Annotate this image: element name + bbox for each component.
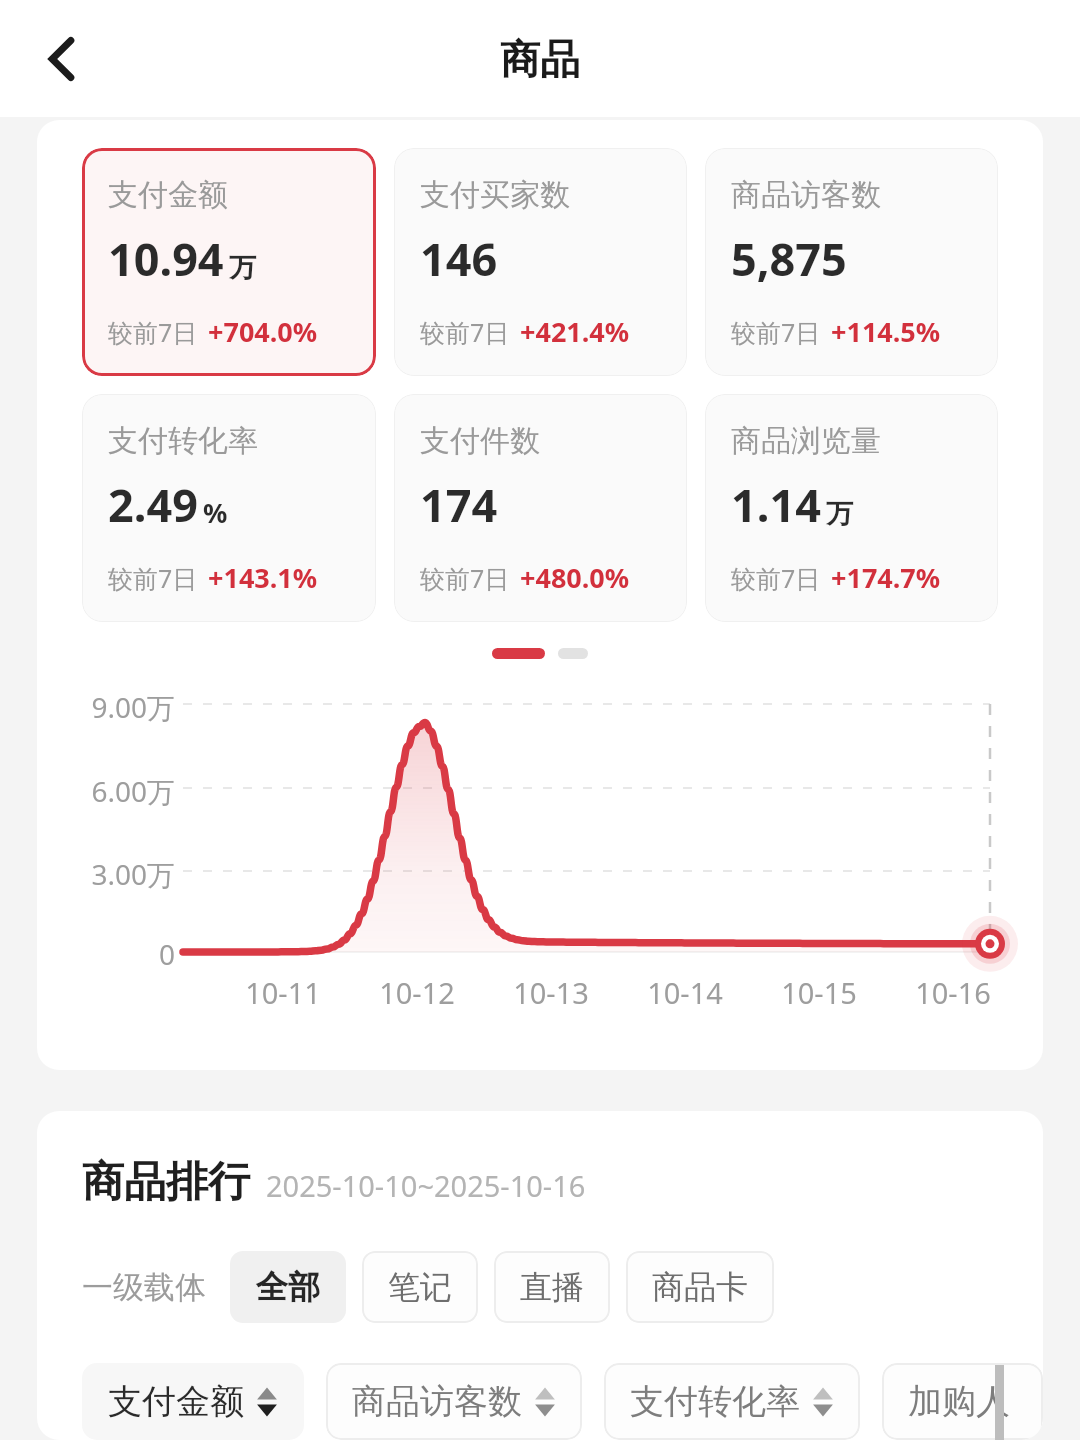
button[interactable]: 支付转化率 bbox=[604, 1363, 860, 1440]
staticText: 商品卡 bbox=[652, 1267, 748, 1307]
staticText: 全部 bbox=[256, 1267, 320, 1307]
staticText: 146 bbox=[420, 228, 498, 289]
staticText: 商品访客数 bbox=[731, 176, 881, 214]
staticText: 10-14 bbox=[625, 973, 745, 1012]
button[interactable]: 笔记 bbox=[362, 1251, 478, 1323]
staticText: 10.94 bbox=[108, 228, 224, 289]
staticText: 6.00万 bbox=[37, 772, 175, 810]
button[interactable]: 商品访客数 bbox=[705, 148, 998, 376]
staticText: 支付转化率 bbox=[630, 1380, 800, 1423]
button[interactable]: 商品浏览量 bbox=[705, 394, 998, 622]
staticText: 直播 bbox=[520, 1267, 584, 1307]
staticText: +480.0% bbox=[520, 559, 630, 596]
staticText: 10-13 bbox=[491, 973, 611, 1012]
staticText: 174 bbox=[420, 474, 498, 535]
staticText: 5,875 bbox=[731, 228, 847, 289]
staticText: 万 bbox=[826, 497, 853, 531]
staticText: 加购人 bbox=[908, 1380, 1010, 1423]
staticText: 支付转化率 bbox=[108, 422, 258, 460]
staticText: 10-12 bbox=[357, 973, 477, 1012]
staticText: 支付金额 bbox=[108, 1380, 244, 1423]
button[interactable]: 支付金额 bbox=[82, 1363, 304, 1440]
staticText: 支付件数 bbox=[420, 422, 540, 460]
staticText: +143.1% bbox=[208, 559, 318, 596]
staticText: 一级载体 bbox=[82, 1268, 206, 1307]
staticText: 0 bbox=[37, 935, 175, 973]
button[interactable]: 商品卡 bbox=[626, 1251, 774, 1323]
button[interactable]: 支付买家数 bbox=[394, 148, 687, 376]
staticText: 9.00万 bbox=[37, 688, 175, 726]
staticText: 笔记 bbox=[388, 1267, 452, 1307]
staticText: +704.0% bbox=[208, 313, 318, 350]
staticText: 2025-10-10~2025-10-16 bbox=[266, 1166, 586, 1205]
button[interactable]: 全部 bbox=[230, 1251, 346, 1323]
staticText: 商品浏览量 bbox=[731, 422, 881, 460]
staticText: 支付金额 bbox=[108, 176, 228, 214]
staticText: 10-11 bbox=[223, 973, 343, 1012]
staticText: +114.5% bbox=[831, 313, 941, 350]
staticText: 3.00万 bbox=[37, 855, 175, 893]
button[interactable]: 支付金额 bbox=[82, 148, 376, 376]
staticText: 较前7日 bbox=[731, 561, 821, 595]
button[interactable]: 支付转化率 bbox=[82, 394, 376, 622]
button[interactable]: Back bbox=[22, 22, 96, 96]
staticText: +421.4% bbox=[520, 313, 630, 350]
staticText: 支付买家数 bbox=[420, 176, 570, 214]
staticText: 较前7日 bbox=[420, 315, 510, 349]
button[interactable]: 支付件数 bbox=[394, 394, 687, 622]
staticText: 较前7日 bbox=[420, 561, 510, 595]
staticText: 商品排行 bbox=[82, 1156, 250, 1209]
staticText: 较前7日 bbox=[108, 315, 198, 349]
staticText: 商品访客数 bbox=[352, 1380, 522, 1423]
staticText: 10-16 bbox=[893, 973, 1013, 1012]
button[interactable]: 加购人 bbox=[882, 1363, 1043, 1440]
button[interactable]: 直播 bbox=[494, 1251, 610, 1323]
staticText: +174.7% bbox=[831, 559, 941, 596]
staticText: 2.49 bbox=[108, 474, 198, 535]
staticText: 1.14 bbox=[731, 474, 821, 535]
staticText: % bbox=[203, 494, 228, 531]
button[interactable]: 商品访客数 bbox=[326, 1363, 582, 1440]
staticText: 商品 bbox=[500, 34, 580, 84]
staticText: 10-15 bbox=[759, 973, 879, 1012]
staticText: 较前7日 bbox=[731, 315, 821, 349]
staticText: 万 bbox=[229, 251, 256, 285]
staticText: 较前7日 bbox=[108, 561, 198, 595]
